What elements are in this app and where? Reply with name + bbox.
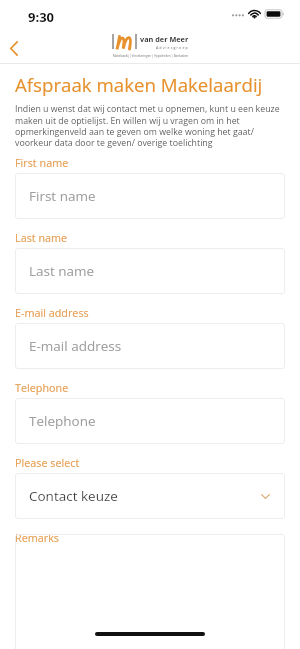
staticText: Last name — [29, 262, 95, 280]
staticText: First name — [15, 155, 69, 170]
staticText: Afspraak maken Makelaardij — [15, 72, 263, 97]
staticText: E-mail address — [29, 337, 122, 355]
button[interactable] — [15, 534, 285, 649]
staticText: Makelaardij | Verzekeringen | Hypotheken… — [113, 54, 189, 58]
staticText: Contact keuze — [29, 487, 118, 505]
staticText: van der Meer — [140, 34, 189, 44]
staticText: Telephone — [29, 412, 96, 430]
staticText: Adviesgroep — [156, 45, 189, 50]
button[interactable]: Telephone — [15, 398, 285, 444]
staticText: Last name — [15, 230, 68, 245]
staticText: Please select — [15, 455, 80, 470]
button[interactable]: Back — [1, 35, 27, 61]
staticText: Indien u wenst dat wij contact met u opn… — [15, 103, 285, 148]
staticText: Remarks — [15, 530, 59, 545]
staticText: 9:30 — [28, 8, 55, 26]
staticText: E-mail address — [15, 305, 89, 320]
staticText: First name — [29, 187, 96, 205]
button[interactable]: Last name — [15, 248, 285, 294]
button[interactable]: First name — [15, 173, 285, 219]
staticText: Telephone — [15, 380, 69, 395]
button[interactable]: Contact keuze — [15, 473, 285, 519]
button[interactable]: E-mail address — [15, 323, 285, 369]
